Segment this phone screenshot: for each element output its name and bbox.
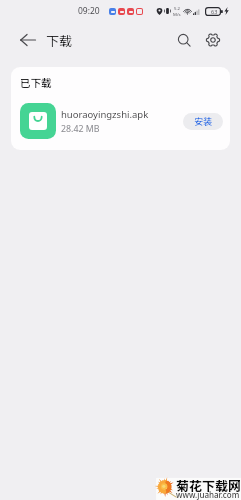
- button[interactable]: huoraoyingzshi.apk: [11, 98, 230, 144]
- button[interactable]: Search: [170, 26, 198, 54]
- staticText: huoraoyingzshi.apk: [61, 108, 149, 121]
- button[interactable]: Settings: [199, 26, 227, 54]
- staticText: M/s: [173, 11, 181, 17]
- staticText: 已下载: [20, 75, 52, 90]
- staticText: 09:20: [78, 5, 100, 17]
- staticText: 63: [211, 8, 218, 15]
- button[interactable]: 安装: [183, 113, 223, 130]
- staticText: 28.42 MB: [61, 123, 100, 135]
- staticText: 5.2: [174, 5, 181, 11]
- staticText: 下载: [46, 31, 73, 50]
- button[interactable]: Back: [14, 26, 42, 54]
- staticText: www.juahar.com: [176, 489, 240, 500]
- staticText: 菊花下载网: [176, 476, 241, 495]
- staticText: 安装: [194, 115, 213, 128]
